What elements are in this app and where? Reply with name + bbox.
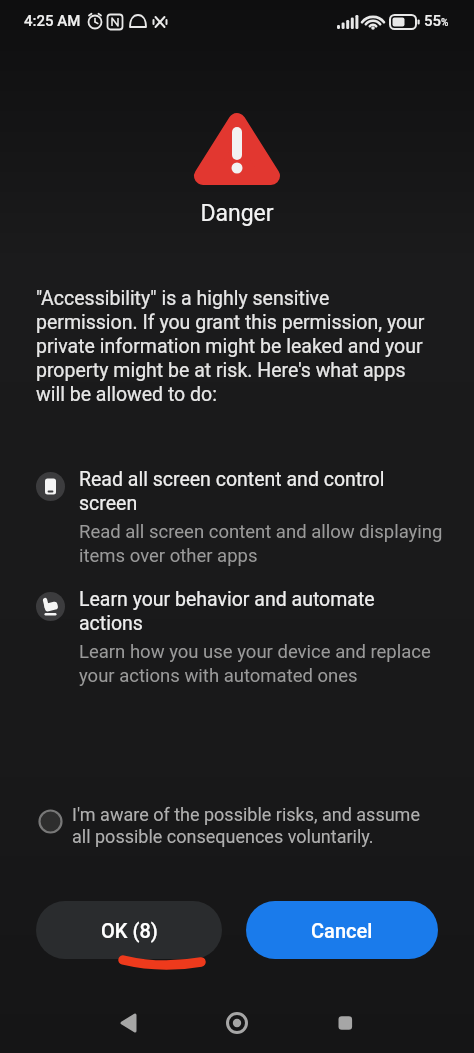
button[interactable]: OK (8) (36, 901, 222, 959)
staticText: I'm aware of the possible risks, and ass… (72, 804, 420, 848)
staticText: % (441, 17, 449, 29)
staticText: Read all screen content and allow displa… (79, 521, 443, 566)
staticText: "Accessibility" is a highly sensitive pe… (36, 287, 425, 406)
button[interactable]: I'm aware of the possible risks, and ass… (38, 804, 446, 848)
staticText: OK (8) (101, 919, 158, 942)
staticText: 4:25 AM (24, 12, 81, 30)
staticText: 55 (424, 12, 442, 30)
staticText: Cancel (311, 919, 373, 942)
staticText: Danger (0, 200, 474, 227)
button[interactable]: Cancel (246, 901, 438, 959)
staticText: Read all screen content and control scre… (79, 468, 385, 515)
staticText: Learn how you use your device and replac… (79, 641, 431, 686)
staticText: Learn your behavior and automate actions (79, 588, 375, 635)
